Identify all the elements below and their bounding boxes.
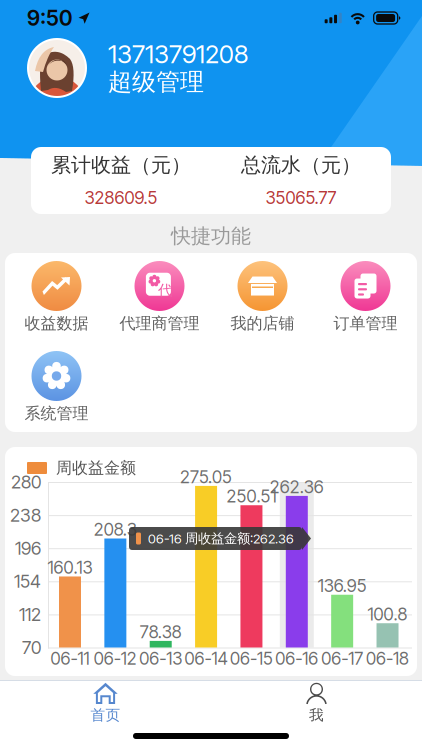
staticText: 136.95 <box>318 575 367 596</box>
staticText: 78.38 <box>140 621 182 642</box>
staticText: 我 <box>309 706 324 724</box>
staticText: 收益数据 <box>24 314 88 333</box>
staticText: 160.13 <box>47 557 92 578</box>
staticText: 06-15 <box>230 648 273 669</box>
staticText: 262.36 <box>270 476 324 497</box>
button[interactable]: 系统管理 <box>5 351 108 441</box>
button[interactable]: 我 <box>211 684 422 722</box>
staticText: 238 <box>10 504 41 526</box>
staticText: 154 <box>14 570 41 592</box>
staticText: 超级管理 <box>108 67 204 97</box>
staticText: 订单管理 <box>333 314 397 333</box>
staticText: 275.05 <box>180 466 232 487</box>
staticText: 280 <box>11 471 41 493</box>
staticText: 周收益金额 <box>56 458 136 478</box>
staticText: 代 <box>158 281 173 299</box>
button[interactable]: 收益数据 <box>5 261 108 351</box>
staticText: 328609.5 <box>84 187 157 208</box>
staticText: 35065.77 <box>265 187 336 208</box>
staticText: 06-16 <box>275 648 318 669</box>
staticText: 06-18 <box>366 648 409 669</box>
staticText: 196 <box>15 537 41 559</box>
staticText: 快捷功能 <box>171 224 251 248</box>
button[interactable]: 我的店铺 <box>211 261 314 351</box>
staticText: 06-11 <box>50 648 89 669</box>
staticText: 06-16 周收益金额:262.36 <box>148 530 294 547</box>
staticText: 250.51 <box>226 486 276 507</box>
button[interactable]: 首页 <box>0 684 211 722</box>
staticText: 208.3 <box>94 519 137 540</box>
staticText: 13713791208 <box>108 39 248 69</box>
staticText: 总流水（元） <box>241 153 361 177</box>
staticText: 100.8 <box>367 604 407 625</box>
staticText: 首页 <box>90 706 120 724</box>
staticText: 70 <box>22 637 41 658</box>
staticText: 112 <box>19 603 41 625</box>
staticText: 06-17 <box>321 648 363 669</box>
staticText: 06-13 <box>139 648 182 669</box>
staticText: 06-12 <box>94 648 137 669</box>
staticText: 代理商管理 <box>119 314 199 333</box>
staticText: 9:50 <box>27 5 72 31</box>
button[interactable]: 代 <box>108 261 211 351</box>
staticText: 我的店铺 <box>230 314 294 333</box>
staticText: 累计收益（元） <box>51 153 191 177</box>
button[interactable]: 订单管理 <box>314 261 417 351</box>
staticText: 06-14 <box>185 648 228 669</box>
staticText: 系统管理 <box>24 404 88 423</box>
